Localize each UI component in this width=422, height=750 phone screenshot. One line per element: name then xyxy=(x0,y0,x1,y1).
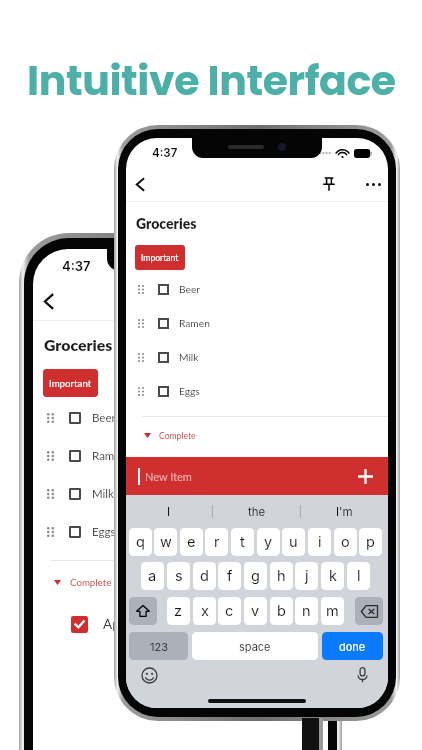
button[interactable]: h xyxy=(270,562,293,590)
button[interactable]: d xyxy=(193,562,216,590)
staticText: Important xyxy=(49,377,92,389)
button[interactable]: t xyxy=(231,528,254,556)
button[interactable]: Backspace xyxy=(355,597,383,625)
button[interactable]: 123 xyxy=(129,632,188,660)
staticText: I'm xyxy=(336,505,353,519)
button[interactable]: Beer xyxy=(33,399,328,437)
staticText: Complete xyxy=(70,576,112,588)
staticText: t xyxy=(240,533,245,551)
button[interactable]: New Item xyxy=(126,457,388,495)
staticText: z xyxy=(174,602,183,620)
button[interactable]: Important xyxy=(135,245,185,270)
staticText: 123 xyxy=(150,640,168,653)
staticText: b xyxy=(277,602,286,620)
button[interactable]: k xyxy=(321,562,344,590)
staticText: j xyxy=(305,567,309,585)
button[interactable]: l xyxy=(347,562,370,590)
staticText: Eggs xyxy=(92,525,116,539)
button[interactable]: Milk xyxy=(33,475,328,513)
button[interactable]: p xyxy=(359,528,382,556)
button[interactable]: x xyxy=(193,597,216,625)
staticText: Intuitive Interface xyxy=(27,52,396,109)
button[interactable]: Important xyxy=(43,369,98,397)
staticText: x xyxy=(201,602,209,620)
staticText: o xyxy=(341,533,350,551)
button[interactable]: e xyxy=(180,528,203,556)
staticText: Complete xyxy=(159,431,196,441)
button[interactable]: u xyxy=(282,528,305,556)
staticText: s xyxy=(175,567,183,585)
button[interactable]: I xyxy=(126,495,212,528)
staticText: Groceries xyxy=(44,335,113,354)
button[interactable]: More options xyxy=(358,167,388,201)
button[interactable]: the xyxy=(213,495,300,528)
staticText: e xyxy=(187,533,196,551)
staticText: l xyxy=(357,567,361,585)
staticText: g xyxy=(251,567,260,585)
button[interactable]: Complete xyxy=(33,561,328,603)
staticText: Apple xyxy=(103,616,138,632)
button[interactable]: Eggs xyxy=(33,513,328,551)
staticText: 4:37 xyxy=(152,146,178,160)
button[interactable]: j xyxy=(295,562,318,590)
staticText: n xyxy=(302,602,311,620)
staticText: 4:37 xyxy=(62,258,91,274)
staticText: k xyxy=(329,567,337,585)
staticText: v xyxy=(251,602,260,620)
staticText: r xyxy=(214,533,220,551)
button[interactable]: v xyxy=(244,597,267,625)
staticText: space xyxy=(239,640,271,653)
button[interactable]: y xyxy=(257,528,280,556)
button[interactable]: Ramen xyxy=(126,306,388,340)
staticText: f xyxy=(227,567,233,585)
button[interactable]: f xyxy=(218,562,241,590)
button[interactable]: Back xyxy=(126,167,153,201)
button[interactable]: g xyxy=(244,562,267,590)
button[interactable]: Shift xyxy=(129,597,157,625)
button[interactable]: Pin xyxy=(314,167,344,201)
staticText: a xyxy=(148,567,157,585)
button[interactable]: w xyxy=(154,528,177,556)
button[interactable]: Apple xyxy=(33,605,328,643)
button[interactable]: c xyxy=(218,597,241,625)
staticText: done xyxy=(339,640,366,653)
button[interactable]: s xyxy=(167,562,190,590)
button[interactable]: space xyxy=(192,632,318,660)
button[interactable]: I'm xyxy=(301,495,388,528)
staticText: u xyxy=(289,533,298,551)
staticText: i xyxy=(318,533,322,551)
button[interactable]: Back xyxy=(33,282,64,320)
staticText: Milk xyxy=(179,351,199,363)
staticText: h xyxy=(277,567,286,585)
button[interactable]: done xyxy=(322,632,383,660)
staticText: w xyxy=(160,533,172,551)
button[interactable]: Milk xyxy=(126,340,388,374)
button[interactable]: o xyxy=(334,528,357,556)
button[interactable]: Dictation xyxy=(351,664,373,686)
button[interactable]: b xyxy=(270,597,293,625)
button[interactable]: Beer xyxy=(126,272,388,306)
staticText: p xyxy=(366,533,375,551)
staticText: d xyxy=(200,567,209,585)
staticText: Ramen xyxy=(179,317,210,329)
button[interactable]: q xyxy=(129,528,152,556)
button[interactable]: Ramen xyxy=(33,437,328,475)
staticText: Beer xyxy=(92,411,116,425)
button[interactable]: a xyxy=(141,562,164,590)
button[interactable]: m xyxy=(321,597,344,625)
staticText: Important xyxy=(141,253,179,263)
button[interactable]: Emoji xyxy=(138,664,160,686)
button[interactable]: Complete xyxy=(126,417,388,454)
button[interactable]: n xyxy=(295,597,318,625)
staticText: New Item xyxy=(145,470,192,483)
staticText: Groceries xyxy=(136,215,197,232)
button[interactable]: i xyxy=(308,528,331,556)
button[interactable]: z xyxy=(167,597,190,625)
staticText: c xyxy=(225,602,234,620)
staticText: y xyxy=(264,533,273,551)
button[interactable]: r xyxy=(205,528,228,556)
staticText: Milk xyxy=(92,487,114,501)
button[interactable]: Eggs xyxy=(126,374,388,408)
